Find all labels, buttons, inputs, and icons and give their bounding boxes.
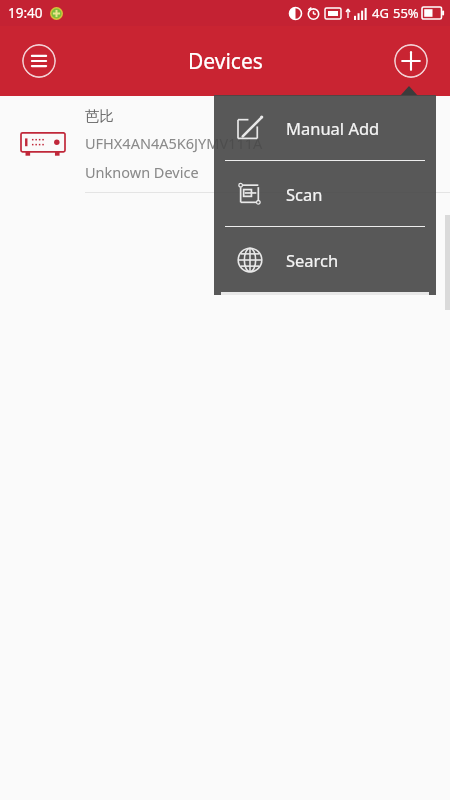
staticText: Unknown Device xyxy=(85,162,199,182)
button[interactable]: Add device xyxy=(394,44,428,78)
button[interactable]: Search xyxy=(214,227,436,292)
button[interactable]: 芭比 xyxy=(0,96,450,192)
staticText: Manual Add xyxy=(286,117,380,139)
button[interactable]: Scan xyxy=(214,161,436,226)
button[interactable]: Menu xyxy=(22,44,56,78)
staticText: Search xyxy=(286,249,339,271)
button[interactable]: Manual Add xyxy=(214,95,436,160)
staticText: Scan xyxy=(286,183,323,205)
staticText: 19:40 xyxy=(8,4,43,22)
staticText: 4G xyxy=(372,4,389,22)
staticText: UFHX4AN4A5K6JYMV111A xyxy=(85,133,263,153)
staticText: Devices xyxy=(188,47,263,76)
staticText: 芭比 xyxy=(85,107,114,125)
staticText: 55% xyxy=(393,4,419,22)
